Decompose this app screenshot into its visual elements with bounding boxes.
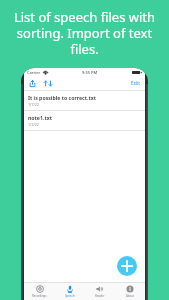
staticText: Recordings [32,294,47,298]
button[interactable]: It is possible to correct.txt [24,91,145,110]
button[interactable]: About [115,283,145,300]
staticText: Carrier [27,70,41,75]
staticText: 1/7/22 [28,102,39,107]
button[interactable]: Edit [131,80,140,87]
staticText: It is possible to correct.txt [28,94,96,101]
button[interactable]: Import text file [28,79,37,88]
staticText: List of speech files with sorting. Impor… [10,8,159,57]
button[interactable]: Recordings [24,283,55,300]
button[interactable]: Sort [43,79,54,88]
staticText: Speech [65,294,75,298]
staticText: 9:55 PM [82,70,98,75]
button[interactable]: Add [117,256,137,276]
staticText: Edit [131,80,140,87]
button[interactable]: note1.txt [24,111,145,130]
staticText: Reader [95,294,105,298]
button[interactable]: Speech [55,283,85,300]
staticText: note1.txt [28,114,52,121]
button[interactable]: Reader [85,283,115,300]
staticText: 1/2/22 [28,122,39,127]
staticText: About [126,294,134,298]
